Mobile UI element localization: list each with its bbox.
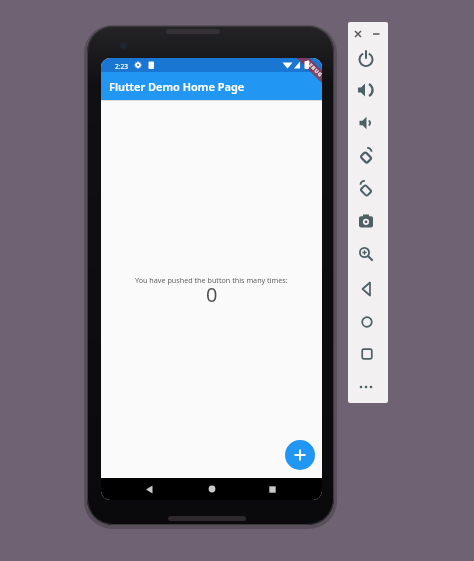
button[interactable]	[197, 478, 227, 500]
button[interactable]	[354, 145, 378, 169]
button[interactable]	[354, 78, 378, 102]
button[interactable]	[354, 47, 378, 71]
button[interactable]	[354, 209, 378, 233]
button[interactable]	[134, 478, 164, 500]
staticText: You have pushed the button this many tim…	[135, 275, 288, 285]
button[interactable]	[364, 22, 388, 46]
staticText: 0	[206, 281, 218, 308]
button[interactable]	[355, 310, 379, 334]
button[interactable]	[354, 242, 378, 266]
button[interactable]	[354, 111, 378, 135]
button[interactable]	[257, 478, 287, 500]
staticText: Flutter Demo Home Page	[109, 79, 245, 94]
button[interactable]	[285, 440, 315, 470]
staticText: DEBUG	[304, 59, 322, 79]
staticText: 2:23	[115, 62, 128, 71]
button[interactable]	[354, 178, 378, 202]
button[interactable]	[354, 375, 378, 399]
button[interactable]	[346, 22, 370, 46]
button[interactable]	[355, 342, 379, 366]
button[interactable]	[355, 277, 379, 301]
